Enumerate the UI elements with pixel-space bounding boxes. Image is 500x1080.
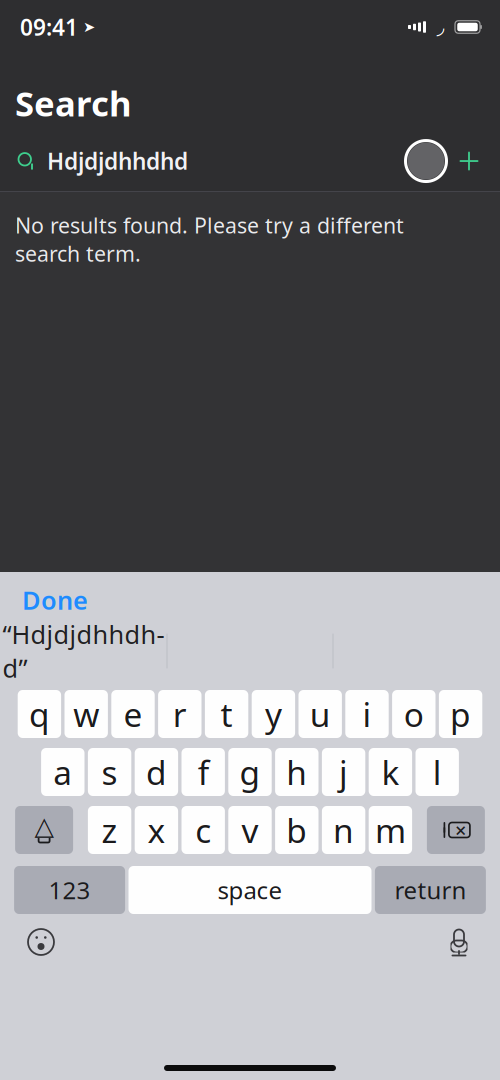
button[interactable]: Dictation	[444, 926, 474, 958]
staticText: g	[239, 750, 260, 794]
button[interactable]: o	[392, 690, 435, 738]
button[interactable]: x	[135, 806, 178, 854]
staticText: “Hdjdjdhhdhd”	[2, 617, 164, 685]
staticText: w	[73, 692, 99, 736]
staticText: Done	[22, 583, 88, 617]
staticText: i	[362, 692, 371, 736]
button[interactable]: l	[415, 748, 459, 796]
staticText: Hdjdjdhhdhd	[47, 146, 188, 176]
button[interactable]: 123	[14, 866, 125, 914]
staticText: z	[102, 808, 118, 852]
button[interactable]: space	[128, 866, 371, 914]
button[interactable]: b	[275, 806, 318, 854]
staticText: q	[29, 692, 50, 736]
button[interactable]: c	[181, 806, 225, 854]
button[interactable]: Voice search	[403, 138, 449, 184]
staticText: ◞	[436, 16, 444, 38]
button[interactable]: w	[64, 690, 108, 738]
staticText: 09:41	[20, 12, 78, 42]
button[interactable]: u	[298, 690, 342, 738]
staticText: x	[147, 808, 165, 852]
button[interactable]: Clear search	[449, 138, 484, 184]
staticText: No results found. Please try a different…	[15, 211, 404, 268]
button[interactable]: r	[158, 690, 201, 738]
button[interactable]: k	[369, 748, 412, 796]
button[interactable]: i	[345, 690, 389, 738]
staticText: d	[146, 750, 167, 794]
staticText: h	[286, 750, 307, 794]
staticText: e	[123, 692, 142, 736]
staticText: s	[102, 750, 118, 794]
button[interactable]: f	[181, 748, 225, 796]
staticText: c	[195, 808, 211, 852]
staticText: b	[286, 808, 307, 852]
button[interactable]: q	[18, 690, 61, 738]
staticText: 123	[49, 874, 91, 906]
staticText: t	[221, 692, 233, 736]
staticText: △	[35, 812, 54, 840]
button[interactable]: g	[228, 748, 272, 796]
staticText: space	[217, 874, 282, 906]
button[interactable]: j	[322, 748, 365, 796]
button[interactable]: a	[41, 748, 84, 796]
button[interactable]: m	[369, 806, 412, 854]
staticText: n	[333, 808, 354, 852]
staticText: ➤	[83, 19, 95, 35]
staticText: y	[265, 692, 282, 736]
staticText: m	[375, 808, 406, 852]
staticText: return	[394, 874, 466, 906]
staticText: o	[404, 692, 424, 736]
staticText: j	[339, 750, 348, 794]
button[interactable]: v	[228, 806, 272, 854]
button[interactable]: z	[88, 806, 131, 854]
staticText: v	[241, 808, 258, 852]
button[interactable]: p	[439, 690, 482, 738]
staticText: ×	[455, 817, 466, 843]
button[interactable]: Delete	[427, 806, 485, 854]
button[interactable]: y	[252, 690, 295, 738]
button[interactable]: s	[88, 748, 131, 796]
button[interactable]: d	[135, 748, 178, 796]
staticText: l	[433, 750, 442, 794]
staticText: k	[381, 750, 399, 794]
staticText: u	[310, 692, 331, 736]
staticText: a	[53, 750, 72, 794]
button[interactable]: t	[205, 690, 248, 738]
staticText: r	[173, 692, 187, 736]
button[interactable]: Hdjdjdhhdhd	[16, 140, 403, 182]
button[interactable]: n	[322, 806, 365, 854]
button[interactable]: h	[275, 748, 318, 796]
staticText: Search	[15, 80, 132, 126]
button[interactable]: Shift	[15, 806, 73, 854]
button[interactable]: return	[375, 866, 486, 914]
button[interactable]: Done	[18, 577, 92, 623]
button[interactable]: e	[111, 690, 155, 738]
staticText: f	[198, 750, 209, 794]
staticText: ▲	[35, 812, 54, 840]
button[interactable]: Emoji keyboard	[26, 927, 56, 957]
staticText: p	[450, 692, 471, 736]
button[interactable]: “Hdjdjdhhdhd”	[0, 630, 166, 672]
